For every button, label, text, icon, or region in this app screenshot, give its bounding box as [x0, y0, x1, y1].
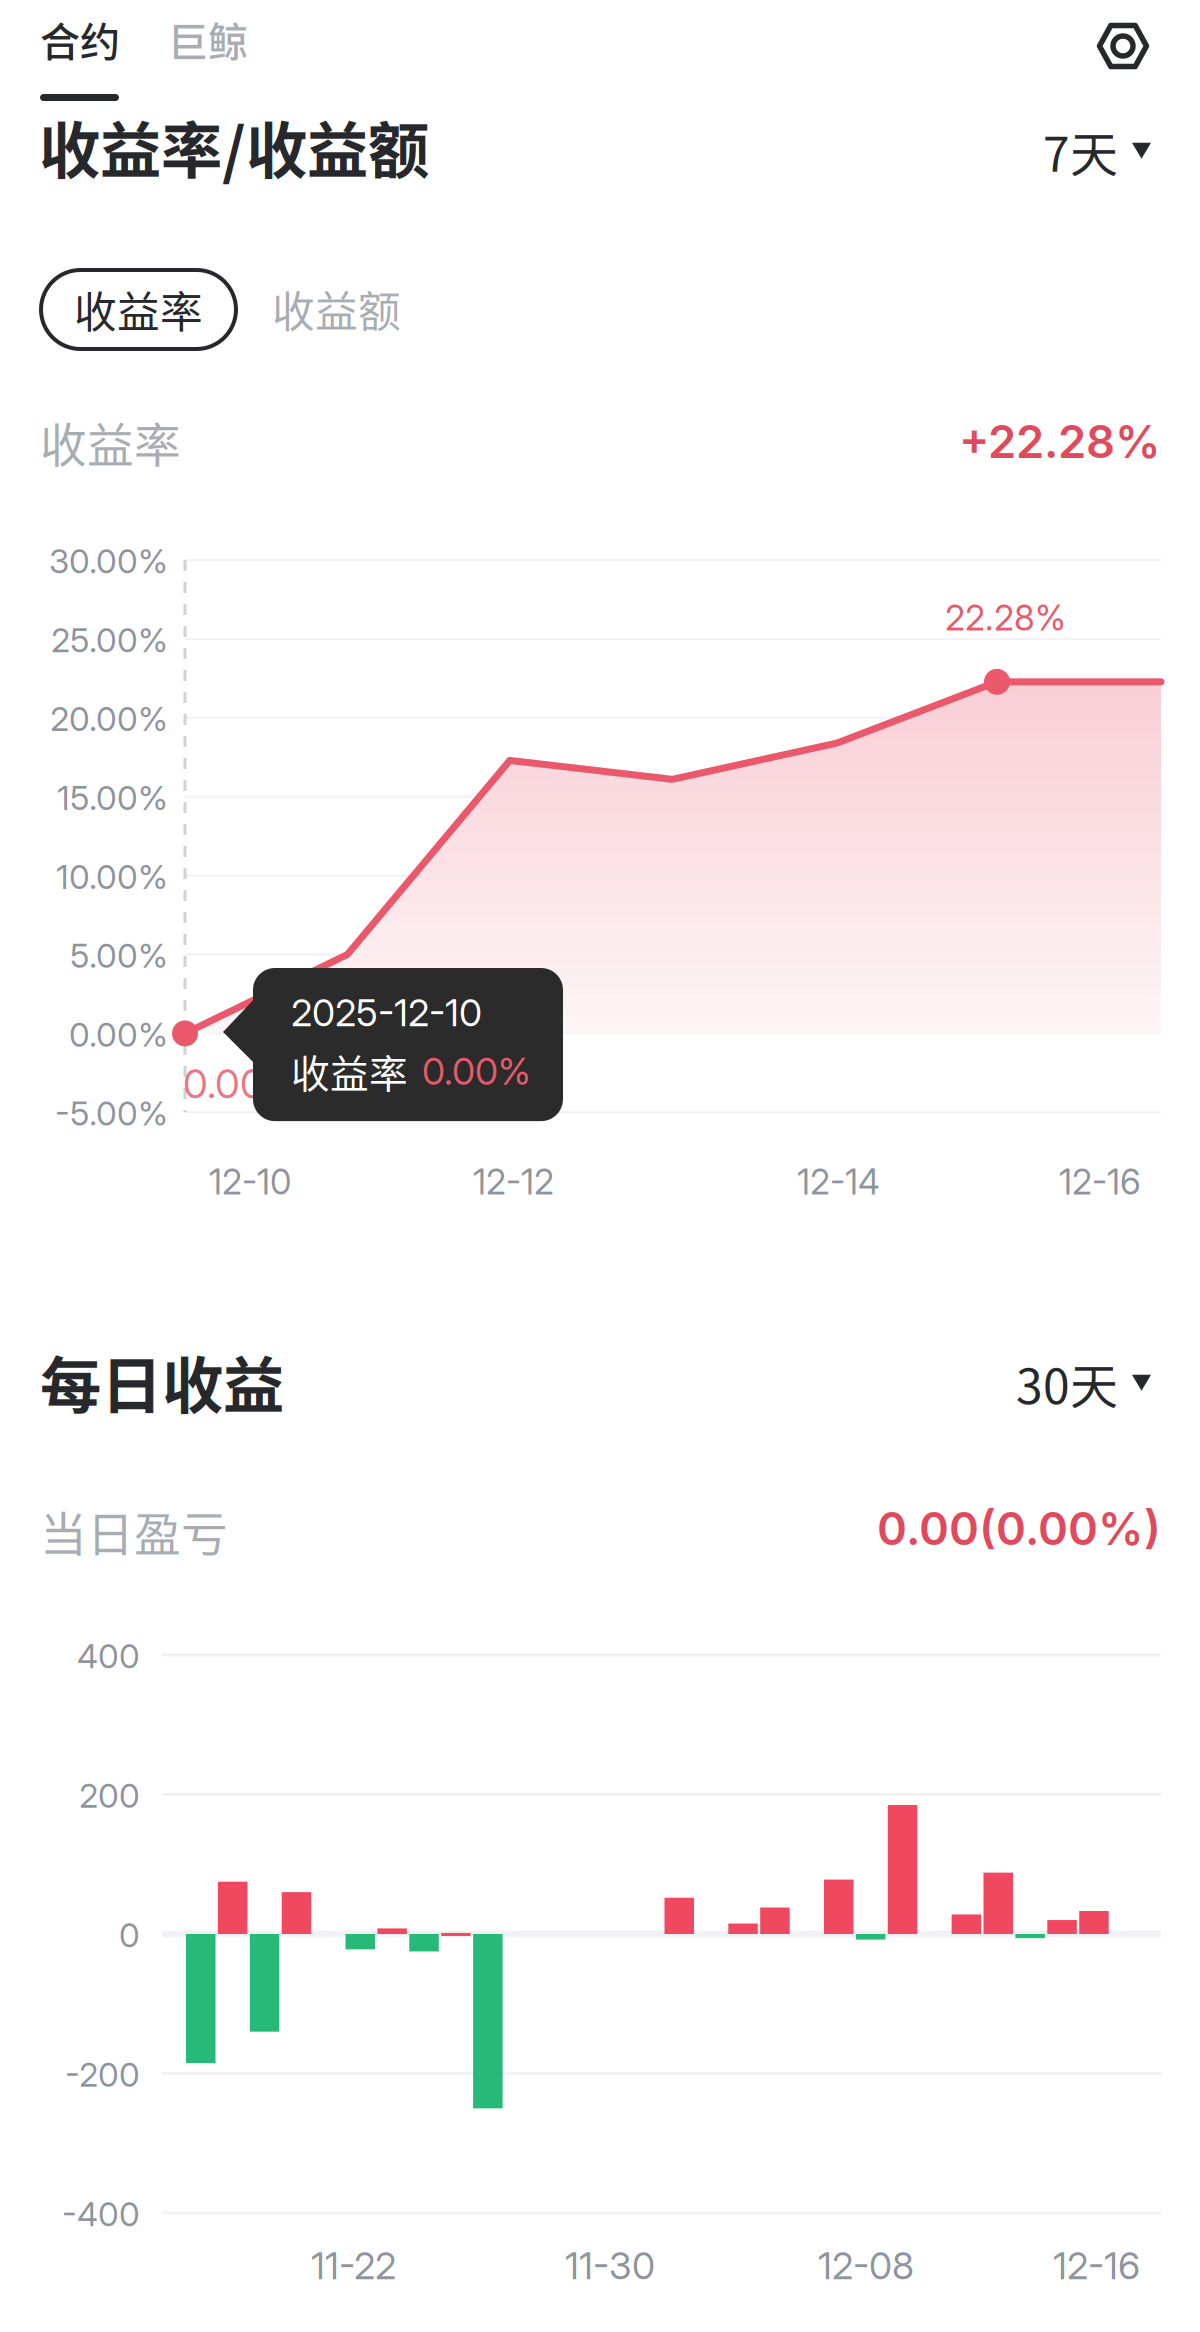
- staticText: 7天: [1043, 116, 1118, 185]
- button[interactable]: 7天: [1043, 116, 1151, 185]
- staticText: 当日盈亏: [40, 1497, 228, 1565]
- button[interactable]: Settings: [1094, 17, 1152, 75]
- staticText: 收益额: [272, 278, 401, 340]
- staticText: 收益率/收益额: [39, 102, 429, 191]
- staticText: 收益率: [291, 1043, 408, 1099]
- staticText: +22.28%: [959, 414, 1161, 469]
- staticText: 12-16: [1053, 2243, 1140, 2288]
- staticText: 12-14: [797, 1161, 880, 1203]
- staticText: 30.00%: [49, 541, 168, 581]
- staticText: 每日收益: [40, 1337, 284, 1426]
- staticText: 合约: [40, 10, 120, 68]
- staticText: 巨鲸: [168, 10, 248, 68]
- staticText: -200: [65, 2054, 140, 2095]
- staticText: 200: [79, 1775, 140, 1816]
- staticText: 11-22: [311, 2243, 396, 2288]
- staticText: 10.00%: [56, 857, 168, 897]
- staticText: 12-16: [1059, 1161, 1141, 1203]
- staticText: 30天: [1016, 1348, 1118, 1417]
- staticText: 20.00%: [50, 699, 168, 739]
- staticText: 25.00%: [51, 620, 168, 660]
- staticText: 400: [77, 1636, 140, 1676]
- staticText: 11-30: [565, 2243, 655, 2288]
- staticText: 5.00%: [70, 935, 168, 976]
- staticText: 12-12: [473, 1161, 554, 1203]
- staticText: 0: [119, 1915, 140, 1955]
- staticText: 0.00%: [69, 1014, 168, 1055]
- button[interactable]: 巨鲸: [168, 10, 248, 116]
- staticText: 0.00%: [183, 1059, 299, 1108]
- button[interactable]: 收益率: [41, 270, 236, 349]
- button[interactable]: 收益额: [272, 270, 401, 348]
- staticText: 12-08: [818, 2243, 914, 2288]
- staticText: 22.28%: [945, 597, 1066, 639]
- staticText: -400: [62, 2194, 140, 2234]
- staticText: 12-10: [209, 1161, 291, 1203]
- button[interactable]: 合约: [40, 10, 120, 116]
- staticText: 收益率: [74, 279, 203, 340]
- staticText: 15.00%: [57, 778, 168, 818]
- staticText: 收益率: [40, 408, 181, 476]
- staticText: 2025-12-10: [291, 990, 482, 1035]
- staticText: 0.00%: [422, 1049, 531, 1094]
- staticText: 0.00(0.00%): [877, 1501, 1161, 1556]
- button[interactable]: 30天: [1016, 1348, 1151, 1417]
- staticText: -5.00%: [55, 1093, 168, 1134]
